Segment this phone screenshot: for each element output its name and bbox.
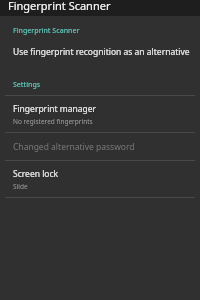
staticText: Settings xyxy=(13,80,41,90)
button[interactable]: Screen lock xyxy=(0,161,200,197)
button: Changed alternative password xyxy=(0,133,200,160)
staticText: Screen lock xyxy=(13,168,59,180)
staticText: Fingerprint Scanner xyxy=(13,26,80,36)
staticText: Slide xyxy=(13,182,28,191)
staticText: Changed alternative password xyxy=(13,141,135,153)
staticText: No registered fingerprints xyxy=(13,117,93,126)
staticText: Use fingerprint recognition as an altern… xyxy=(13,46,197,58)
staticText: Fingerprint Scanner xyxy=(8,0,111,13)
button[interactable]: Fingerprint manager xyxy=(0,96,200,132)
staticText: Fingerprint manager xyxy=(13,103,97,115)
